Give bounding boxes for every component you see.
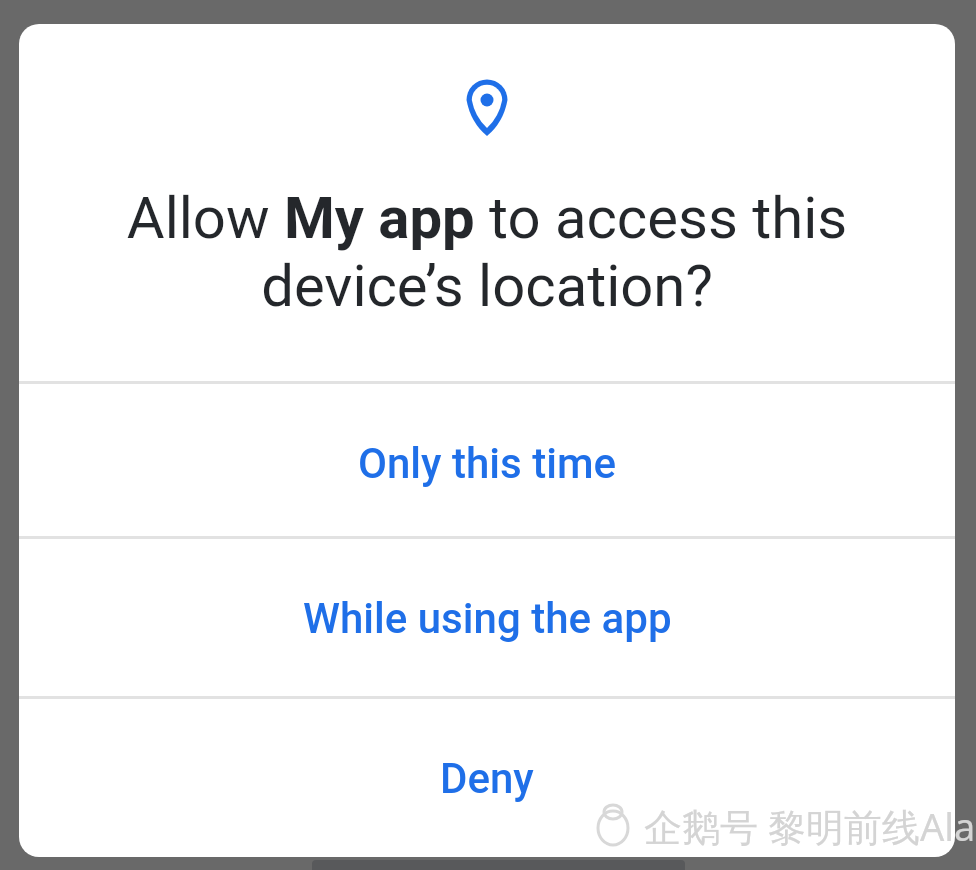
button[interactable]: Only this time bbox=[19, 388, 955, 538]
staticText: While using the app bbox=[303, 594, 672, 643]
button[interactable]: While using the app bbox=[19, 540, 955, 697]
button[interactable]: Deny bbox=[19, 699, 955, 857]
staticText: 企鹅号 黎明前线Alan bbox=[644, 800, 976, 852]
staticText: Only this time bbox=[358, 439, 617, 488]
staticText: Allow My app to access this device’s loc… bbox=[19, 184, 955, 320]
staticText: Deny bbox=[440, 754, 534, 803]
